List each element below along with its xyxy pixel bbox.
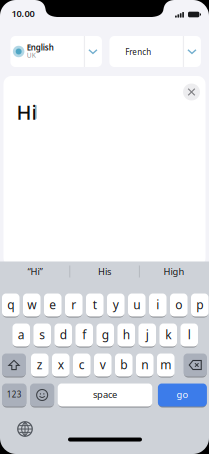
staticText: h [123, 326, 130, 342]
button[interactable]: e [44, 293, 61, 317]
button[interactable]: k [159, 323, 177, 347]
button[interactable]: t [86, 293, 103, 317]
staticText: o [175, 296, 182, 312]
button[interactable] [2, 353, 26, 377]
staticText: 123 [7, 389, 22, 400]
staticText: l [188, 326, 191, 342]
staticText: English [27, 42, 54, 53]
staticText: f [82, 326, 86, 342]
button[interactable]: c [73, 353, 90, 377]
staticText: z [37, 356, 43, 372]
button[interactable]: r [65, 293, 82, 317]
staticText: b [120, 356, 127, 372]
staticText: a [18, 326, 25, 342]
staticText: go [176, 388, 188, 401]
button[interactable] [183, 83, 200, 100]
button[interactable] [30, 383, 54, 407]
staticText: “Hi” [27, 265, 42, 278]
staticText: High [163, 265, 184, 278]
staticText: UK [27, 51, 36, 60]
staticText: v [100, 356, 106, 372]
button[interactable]: His [70, 261, 138, 281]
button[interactable]: v [94, 353, 111, 377]
staticText: i [156, 296, 159, 312]
button[interactable]: “Hi” [1, 261, 69, 281]
button[interactable]: s [33, 323, 51, 347]
button[interactable]: d [54, 323, 72, 347]
button[interactable]: q [2, 293, 19, 317]
staticText: t [93, 296, 97, 312]
button[interactable]: English [10, 36, 102, 67]
button[interactable]: l [180, 323, 198, 347]
staticText: m [160, 356, 171, 372]
staticText: His [98, 265, 111, 278]
button[interactable]: p [191, 293, 208, 317]
staticText: 10.00 [11, 7, 34, 20]
button[interactable]: High [140, 261, 208, 281]
staticText: c [79, 356, 85, 372]
staticText: u [133, 296, 140, 312]
staticText: e [49, 296, 56, 312]
button[interactable]: z [31, 353, 48, 377]
staticText: n [141, 356, 148, 372]
button[interactable]: i [149, 293, 166, 317]
button[interactable]: y [107, 293, 124, 317]
button[interactable] [17, 421, 32, 436]
staticText: d [60, 326, 67, 342]
staticText: j [146, 326, 149, 342]
staticText: y [113, 296, 119, 312]
button[interactable]: n [136, 353, 153, 377]
button[interactable]: h [117, 323, 135, 347]
staticText: g [102, 326, 109, 342]
button[interactable]: w [23, 293, 40, 317]
button[interactable]: space [58, 383, 152, 407]
staticText: s [39, 326, 45, 342]
button[interactable]: m [157, 353, 174, 377]
button[interactable]: French [109, 36, 201, 67]
staticText: French [125, 47, 151, 57]
staticText: p [196, 296, 203, 312]
button[interactable]: f [75, 323, 93, 347]
button[interactable]: x [52, 353, 69, 377]
button[interactable]: go [158, 383, 207, 407]
button[interactable]: u [128, 293, 145, 317]
button[interactable] [183, 353, 207, 377]
button[interactable]: g [96, 323, 114, 347]
staticText: Hi [16, 99, 36, 125]
staticText: q [7, 296, 14, 312]
button[interactable]: j [138, 323, 156, 347]
staticText: space [93, 388, 117, 401]
button[interactable]: o [170, 293, 187, 317]
staticText: w [27, 296, 36, 312]
button[interactable]: 123 [2, 383, 27, 407]
staticText: r [71, 296, 76, 312]
button[interactable]: b [115, 353, 132, 377]
staticText: k [165, 326, 171, 342]
staticText: x [58, 356, 64, 372]
button[interactable]: a [12, 323, 30, 347]
